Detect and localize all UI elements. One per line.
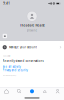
staticText: Privacy and security <box>3 68 28 72</box>
staticText: Entwine <box>26 29 37 32</box>
button[interactable]: Profile <box>51 87 64 95</box>
button[interactable]: Threads <box>26 87 38 95</box>
button[interactable]: Search <box>13 87 26 95</box>
button[interactable]: Manage your account <box>0 44 64 50</box>
button[interactable]: Privacy and security <box>0 68 64 72</box>
staticText: Version 4.2.1 (1082) <box>3 74 16 76</box>
staticText: Your activity <box>3 55 11 57</box>
staticText: Manage your account <box>9 45 37 49</box>
button[interactable]: Edit profile <box>2 33 8 39</box>
button[interactable]: Home <box>0 87 13 95</box>
button[interactable]: See all activity <box>0 65 64 68</box>
staticText: See all activity <box>3 65 21 68</box>
button[interactable]: Alerts <box>38 87 51 95</box>
staticText: Recently viewed conversations <box>3 59 44 63</box>
staticText: Theodore Hearst <box>19 24 44 27</box>
staticText: 9:41 <box>3 2 10 5</box>
